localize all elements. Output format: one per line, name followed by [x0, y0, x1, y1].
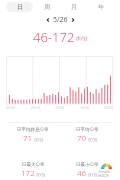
staticText: 次/分 [36, 172, 46, 177]
staticText: 71 [23, 132, 33, 143]
staticText: 次/分 [76, 35, 88, 42]
staticText: 日平均心率 [76, 127, 99, 133]
staticText: 46-172 [33, 28, 75, 44]
staticText: 日最小心率 [76, 162, 99, 168]
staticText: 月 [71, 3, 77, 11]
staticText: 周 [44, 3, 50, 11]
button[interactable]: 日 [6, 2, 33, 12]
staticText: 46 [77, 167, 87, 178]
staticText: 24:00 [104, 105, 113, 110]
staticText: 18:00 [80, 105, 89, 110]
staticText: 00:00 [6, 105, 15, 110]
staticText: 12:00 [55, 105, 64, 110]
staticText: 172 [21, 167, 35, 178]
staticText: 次/分 [88, 137, 98, 142]
button[interactable]: 日最大心率 [6, 161, 60, 180]
button[interactable]: 月 [60, 2, 87, 12]
staticText: 年 [98, 3, 104, 11]
staticText: 次/分 [34, 137, 44, 142]
button[interactable]: 日平均静息心率 [6, 126, 60, 156]
staticText: 华米健康 HEALTH [98, 170, 116, 178]
button[interactable]: Previous day [43, 15, 53, 25]
staticText: 次/分 [88, 172, 98, 177]
button[interactable]: 日平均心率 [60, 126, 114, 156]
button[interactable]: 周 [33, 2, 60, 12]
button[interactable]: Next day [68, 15, 78, 25]
staticText: 5/26 [53, 15, 68, 25]
staticText: 06:00 [31, 105, 40, 110]
staticText: 日最大心率 [22, 162, 45, 168]
staticText: 日 [17, 3, 23, 11]
button[interactable]: 年 [87, 2, 114, 12]
staticText: 70 [77, 132, 87, 143]
button[interactable]: 日最小心率 [60, 161, 114, 180]
staticText: 日平均静息心率 [17, 127, 49, 133]
